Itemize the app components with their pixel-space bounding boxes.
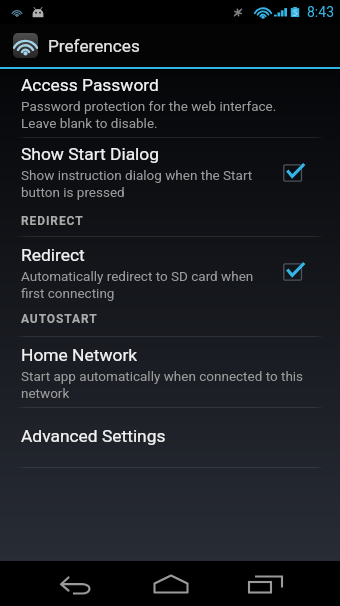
staticText: Leave blank to disable. bbox=[21, 115, 158, 131]
staticText: first connecting bbox=[21, 285, 115, 301]
staticText: Advanced Settings bbox=[21, 426, 166, 446]
button[interactable] bbox=[0, 237, 340, 306]
staticText: Password protection for the web interfac… bbox=[21, 98, 277, 114]
button[interactable]: Home bbox=[152, 561, 190, 606]
staticText: button is pressed bbox=[21, 184, 125, 200]
button[interactable] bbox=[0, 409, 340, 466]
staticText: Start app automatically when connected t… bbox=[21, 368, 304, 384]
staticText: REDIRECT bbox=[21, 214, 84, 228]
button[interactable] bbox=[0, 337, 340, 407]
button[interactable]: Recent apps bbox=[247, 561, 285, 606]
staticText: Access Password bbox=[21, 75, 159, 95]
staticText: Automatically redirect to SD card when bbox=[21, 268, 254, 284]
button[interactable] bbox=[0, 70, 340, 137]
staticText: Show Start Dialog bbox=[21, 144, 160, 164]
button[interactable]: Toggle Show Start Dialog bbox=[276, 159, 308, 191]
button[interactable]: Back bbox=[56, 561, 94, 606]
staticText: network bbox=[21, 385, 70, 401]
staticText: Redirect bbox=[21, 245, 85, 265]
staticText: Preferences bbox=[48, 36, 140, 56]
staticText: AUTOSTART bbox=[21, 312, 98, 326]
button[interactable] bbox=[0, 308, 340, 338]
staticText: 8:43 bbox=[307, 4, 334, 20]
button[interactable] bbox=[0, 139, 340, 206]
button[interactable]: Toggle Redirect bbox=[276, 258, 308, 290]
staticText: Home Network bbox=[21, 345, 138, 365]
button[interactable]: Preferences bbox=[0, 24, 340, 67]
staticText: Show instruction dialog when the Start bbox=[21, 167, 253, 183]
button[interactable] bbox=[0, 208, 340, 238]
